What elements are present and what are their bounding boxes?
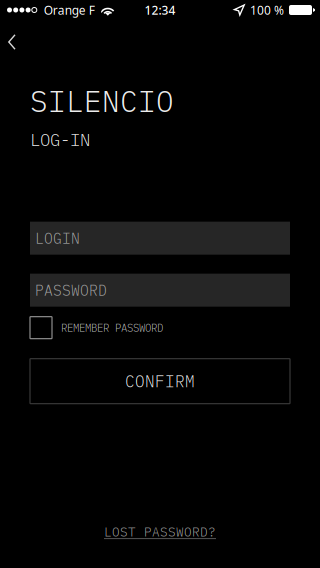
staticText: SILENCIO (30, 82, 174, 120)
staticText: LOST PASSWORD? (104, 523, 216, 540)
button[interactable]: LOGIN (30, 222, 290, 255)
staticText: PASSWORD (35, 281, 107, 300)
staticText: CONFIRM (125, 371, 195, 392)
staticText: LOG-IN (30, 128, 90, 151)
button[interactable]: Back (0, 20, 37, 56)
button[interactable]: LOST PASSWORD? (94, 517, 226, 546)
button[interactable]: CONFIRM (30, 359, 290, 404)
staticText: 12:34 (144, 2, 175, 18)
staticText: REMEMBER PASSWORD (61, 321, 163, 335)
staticText: LOGIN (35, 229, 80, 248)
staticText: 100 % (250, 2, 284, 18)
button[interactable]: REMEMBER PASSWORD (30, 317, 290, 339)
staticText: Orange F (44, 2, 95, 18)
button[interactable]: PASSWORD (30, 274, 290, 307)
